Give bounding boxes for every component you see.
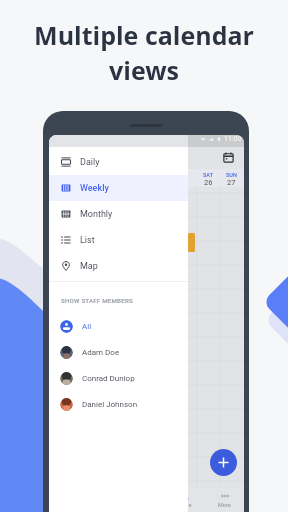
button[interactable]: Daily xyxy=(49,149,188,175)
staticText: Daniel Johnson xyxy=(82,400,138,409)
staticText: Weekly xyxy=(80,183,109,194)
button[interactable]: Daniel Johnson xyxy=(49,391,188,417)
staticText: SUN xyxy=(226,172,237,178)
staticText: Monthly xyxy=(80,209,113,220)
staticText: Adam Doe xyxy=(82,348,120,357)
staticText: Conrad Dunlop xyxy=(82,374,135,383)
button[interactable]: List xyxy=(49,227,188,253)
staticText: 26 xyxy=(204,178,213,187)
staticText: Multiple calendar views xyxy=(24,18,264,88)
staticText: More xyxy=(218,502,231,508)
staticText: 27 xyxy=(227,178,236,187)
staticText: List xyxy=(80,235,95,246)
staticText: SHOW STAFF MEMBERS xyxy=(61,297,133,304)
button[interactable]: Monthly xyxy=(49,201,188,227)
staticText: Map xyxy=(80,261,98,272)
staticText: All xyxy=(82,322,92,331)
button[interactable]: SAT xyxy=(197,169,220,187)
button[interactable]: Calendar xyxy=(223,152,234,163)
button[interactable]: Adam Doe xyxy=(49,339,188,365)
staticText: SAT xyxy=(203,172,214,178)
button[interactable]: More xyxy=(205,488,244,508)
button[interactable]: Weekly xyxy=(49,175,188,201)
staticText: 11:00 xyxy=(224,135,242,143)
button[interactable]: SUN xyxy=(220,169,243,187)
button[interactable]: Conrad Dunlop xyxy=(49,365,188,391)
staticText: Daily xyxy=(80,157,100,168)
button[interactable]: Map xyxy=(49,253,188,279)
staticText: Time xyxy=(179,502,192,508)
button[interactable]: Add event xyxy=(210,449,237,476)
button[interactable]: Time xyxy=(166,488,205,508)
button[interactable]: All xyxy=(49,313,188,339)
